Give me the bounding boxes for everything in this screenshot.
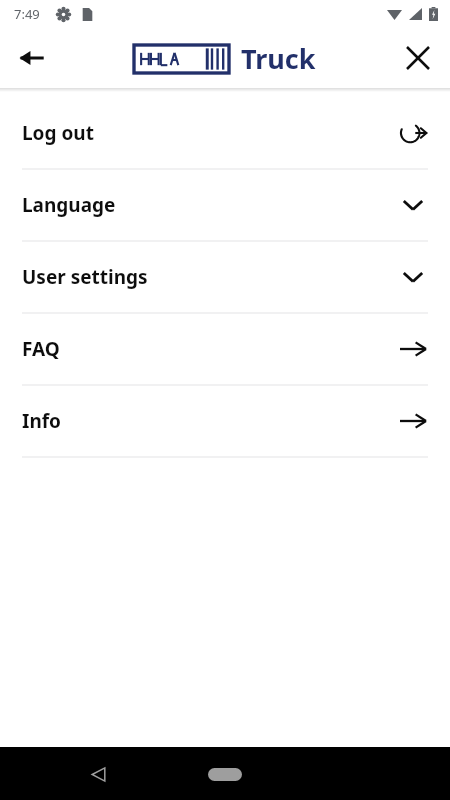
staticText: Info xyxy=(22,408,61,434)
button[interactable]: Log out xyxy=(0,98,450,170)
staticText: Log out xyxy=(22,120,94,146)
button[interactable]: Close xyxy=(394,34,442,82)
button[interactable]: User settings xyxy=(0,242,450,314)
button[interactable]: Info xyxy=(0,386,450,458)
button[interactable]: Home xyxy=(195,759,255,789)
staticText: 7:49 xyxy=(14,5,40,23)
staticText: Truck xyxy=(241,40,316,77)
button[interactable]: FAQ xyxy=(0,314,450,386)
staticText: User settings xyxy=(22,264,148,290)
button[interactable]: Back xyxy=(78,754,118,794)
staticText: Language xyxy=(22,192,116,218)
button[interactable]: Back xyxy=(8,34,56,82)
staticText: FAQ xyxy=(22,336,60,362)
button[interactable]: Language xyxy=(0,170,450,242)
